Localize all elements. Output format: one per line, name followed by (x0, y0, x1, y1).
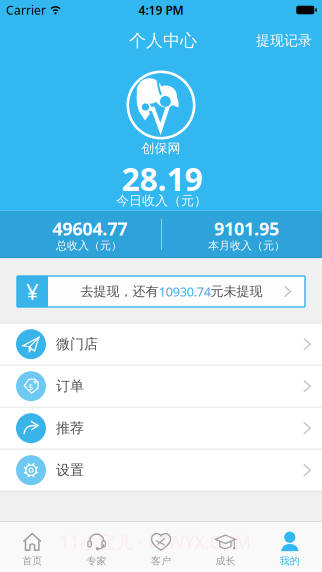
staticText: 9101.95 (214, 216, 279, 241)
staticText: ¥ (26, 276, 39, 306)
staticText: Carrier (6, 2, 46, 18)
staticText: 我的 (280, 555, 300, 567)
staticText: 创保网 (141, 140, 180, 157)
button[interactable]: 专家 (64, 522, 129, 572)
staticText: 本月收入（元） (208, 239, 285, 253)
staticText: 订单 (56, 377, 84, 395)
staticText: 10930.74 (158, 283, 210, 300)
staticText: 推荐 (56, 419, 84, 437)
staticText: 49604.77 (52, 216, 127, 241)
staticText: 微门店 (56, 335, 98, 353)
button[interactable]: 我的 (258, 522, 322, 572)
staticText: 11小宝儿 · UIWYX.COM (59, 529, 250, 554)
button[interactable]: 设置 (0, 450, 322, 491)
staticText: 首页 (22, 555, 42, 567)
staticText: 个人中心 (129, 30, 197, 51)
staticText: 成长 (215, 555, 235, 567)
staticText: 设置 (56, 461, 84, 479)
staticText: 客户 (151, 555, 171, 567)
button[interactable]: 客户 (129, 522, 193, 572)
button[interactable]: 提现记录 (256, 33, 322, 51)
button[interactable]: 成长 (193, 522, 258, 572)
staticText: 提现记录 (256, 32, 312, 49)
staticText: 总收入（元） (56, 239, 122, 253)
staticText: $ (28, 381, 33, 393)
staticText: 去提现，还有 (80, 283, 158, 300)
button[interactable]: $ (0, 366, 322, 407)
button[interactable]: 微门店 (0, 324, 322, 365)
staticText: 专家 (87, 555, 107, 567)
staticText: 4:19 PM (138, 2, 183, 18)
staticText: 28.19 (121, 157, 202, 200)
button[interactable]: ¥ (17, 276, 305, 307)
button[interactable]: 首页 (0, 522, 64, 572)
button[interactable]: 推荐 (0, 408, 322, 449)
staticText: 元未提现 (210, 283, 262, 300)
staticText: 今日收入（元） (116, 192, 207, 209)
